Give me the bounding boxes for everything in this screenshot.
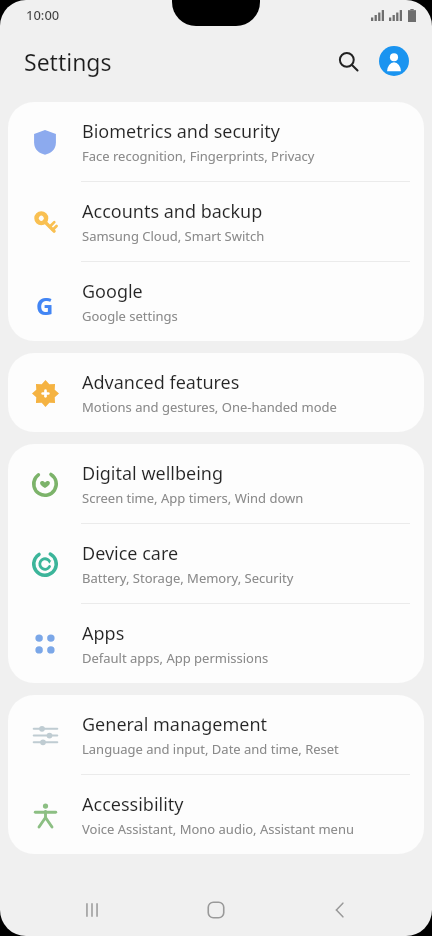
button[interactable]: Apps	[8, 604, 424, 683]
staticText: Digital wellbeing	[82, 461, 224, 486]
staticText: Accessibility	[82, 792, 184, 817]
staticText: Voice Assistant, Mono audio, Assistant m…	[82, 820, 354, 838]
staticText: Default apps, App permissions	[82, 649, 269, 667]
staticText: Biometrics and security	[82, 119, 280, 144]
staticText: Samsung Cloud, Smart Switch	[82, 227, 265, 245]
button[interactable]: Recent apps	[60, 884, 124, 936]
staticText: General management	[82, 712, 268, 737]
button[interactable]: Accessibility	[8, 775, 424, 854]
staticText: Screen time, App timers, Wind down	[82, 489, 304, 507]
button[interactable]: Back	[308, 884, 372, 936]
button[interactable]: Biometrics and security	[8, 102, 424, 181]
staticText: G	[36, 289, 54, 315]
button[interactable]: General management	[8, 695, 424, 774]
staticText: Face recognition, Fingerprints, Privacy	[82, 147, 315, 165]
button[interactable]: Accounts and backup	[8, 182, 424, 261]
button[interactable]: G	[8, 262, 424, 341]
staticText: Motions and gestures, One-handed mode	[82, 398, 337, 416]
staticText: Advanced features	[82, 370, 240, 395]
button[interactable]: Search	[328, 41, 368, 81]
button[interactable]: Device care	[8, 524, 424, 603]
staticText: Device care	[82, 541, 179, 566]
button[interactable]: Advanced features	[8, 353, 424, 432]
staticText: Google settings	[82, 307, 178, 325]
staticText: Google	[82, 279, 143, 304]
staticText: Language and input, Date and time, Reset	[82, 740, 339, 758]
staticText: Battery, Storage, Memory, Security	[82, 569, 294, 587]
staticText: Accounts and backup	[82, 199, 263, 224]
staticText: 10:00	[26, 6, 60, 24]
button[interactable]: Home	[184, 884, 248, 936]
staticText: Settings	[24, 46, 112, 77]
button[interactable]: Digital wellbeing	[8, 444, 424, 523]
staticText: Apps	[82, 621, 125, 646]
button[interactable]: Samsung account	[374, 41, 414, 81]
